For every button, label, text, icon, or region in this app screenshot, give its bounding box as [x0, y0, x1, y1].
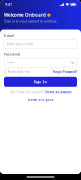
staticText: Forgot Password?	[53, 70, 77, 74]
button[interactable]: Remember me	[4, 70, 31, 74]
staticText: Remember me	[8, 70, 31, 74]
button[interactable]: Browse as a guest	[4, 98, 77, 102]
staticText: Browse as a guest	[27, 98, 53, 102]
button[interactable]: Forgot Password?	[53, 70, 77, 74]
staticText: ••••••••	[7, 61, 15, 65]
staticText: Don't have an account?	[9, 90, 43, 94]
staticText: Sign In	[33, 79, 47, 84]
staticText: E-mail	[4, 33, 14, 38]
button[interactable]: Create an account	[44, 90, 71, 94]
staticText: Create an account	[44, 90, 71, 94]
staticText: Sign in to your account to continue	[4, 19, 57, 23]
staticText: Welcome Onboard	[4, 12, 46, 18]
staticText: 9:41	[5, 2, 12, 7]
staticText: Enter your e-mail	[7, 42, 34, 46]
button[interactable]: Sign In	[4, 77, 77, 87]
staticText: Password	[4, 52, 20, 57]
